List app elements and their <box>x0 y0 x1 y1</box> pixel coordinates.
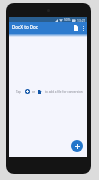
button[interactable]: My files <box>71 22 80 34</box>
button[interactable]: Add file <box>71 140 83 152</box>
staticText: 13:21 <box>77 18 86 22</box>
staticText: 50% <box>64 18 71 22</box>
staticText: Tap <box>16 90 21 94</box>
staticText: to add a file for conversion <box>45 90 83 94</box>
staticText: or <box>32 90 36 94</box>
staticText: DocX to Doc <box>12 24 39 30</box>
button[interactable]: More options <box>80 22 87 34</box>
